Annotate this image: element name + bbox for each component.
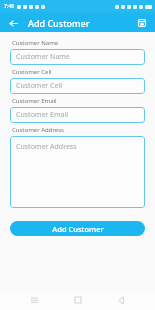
staticText: Customer Address [16, 142, 77, 152]
staticText: Customer Email [16, 110, 69, 120]
staticText: 7:48 [4, 3, 14, 10]
staticText: Add Customer [52, 224, 104, 234]
button[interactable]: Customer Address [10, 136, 145, 208]
button[interactable]: Customer Cell [10, 78, 145, 94]
button[interactable]: Customer Name [10, 49, 145, 65]
staticText: Customer Cell [12, 68, 52, 76]
button[interactable]: Back [5, 15, 21, 31]
button[interactable]: Save [134, 15, 150, 31]
staticText: Customer Name [16, 52, 70, 62]
staticText: Customer Cell [16, 81, 63, 91]
staticText: Customer Name [12, 39, 59, 47]
staticText: Customer Address [12, 126, 64, 134]
button[interactable]: Add Customer [10, 221, 145, 236]
staticText: Add Customer [28, 17, 90, 29]
staticText: Customer Email [12, 97, 57, 105]
button[interactable]: Customer Email [10, 107, 145, 123]
button[interactable]: Recent apps [24, 290, 44, 310]
button[interactable]: Home [68, 290, 88, 310]
button[interactable]: Back [111, 290, 131, 310]
